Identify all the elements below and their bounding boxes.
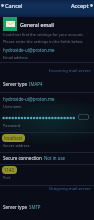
button[interactable]: Server type: [0, 204, 94, 213]
staticText: Incoming mail server: [49, 68, 91, 74]
other: Accept: [89, 3, 94, 8]
staticText: Server type: [3, 204, 27, 210]
button[interactable]: hydroxide-ui@proton.me: [0, 95, 94, 111]
button[interactable]: General email: [3, 17, 54, 31]
staticText: Port: [3, 175, 11, 180]
button[interactable]: Accept: [69, 0, 94, 11]
button[interactable]: Secure connection: [0, 155, 94, 164]
staticText: General email: [20, 21, 54, 28]
button[interactable]: Show password: [0, 113, 94, 132]
button[interactable]: Show password: [78, 114, 89, 120]
button[interactable]: 1143: [0, 165, 94, 184]
staticText: hydroxide-ui@proton.me: [3, 96, 55, 102]
staticText: IMAP4: [29, 81, 43, 87]
staticText: hydroxide-ui@proton.me: [3, 47, 55, 53]
staticText: Server type: [3, 81, 27, 87]
other: Cancel: [0, 3, 5, 8]
staticText: Username: [3, 104, 22, 109]
staticText: Password: [3, 123, 21, 128]
button[interactable]: Server type: [0, 81, 94, 90]
staticText: Server address: [3, 143, 30, 148]
staticText: Secure connection: [3, 155, 42, 161]
staticText: Outgoing mail server: [49, 186, 91, 192]
button[interactable]: Cancel: [0, 0, 25, 11]
staticText: Email address: [3, 55, 28, 60]
staticText: SMTP: [29, 204, 41, 210]
button[interactable]: hydroxide-ui@proton.me: [0, 46, 94, 62]
staticText: 1143: [4, 167, 15, 173]
staticText: localhost: [4, 135, 23, 141]
staticText: Accept: [71, 2, 89, 10]
staticText: Cancel: [5, 2, 23, 10]
staticText: Could not find the settings for your acc…: [3, 32, 91, 44]
staticText: Not in use: [44, 155, 66, 161]
button[interactable]: localhost: [0, 133, 94, 152]
